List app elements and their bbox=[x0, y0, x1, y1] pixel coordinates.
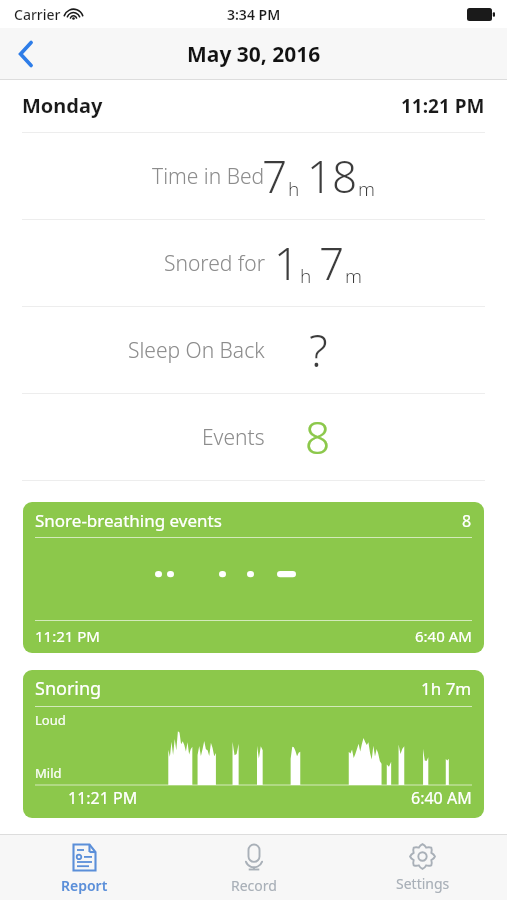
staticText: 1h 7m bbox=[421, 677, 472, 700]
button[interactable]: Snore-breathing events bbox=[23, 502, 484, 653]
staticText: 11:21 PM bbox=[401, 93, 485, 119]
button[interactable]: Time in Bed bbox=[0, 133, 507, 219]
staticText: Monday bbox=[22, 92, 103, 119]
staticText: 8 bbox=[462, 510, 472, 532]
button[interactable]: Snored for bbox=[0, 220, 507, 306]
button[interactable]: Events bbox=[0, 394, 507, 480]
staticText: h bbox=[300, 263, 312, 289]
staticText: 3:34 PM bbox=[227, 5, 281, 24]
staticText: m bbox=[345, 263, 362, 289]
staticText: m bbox=[358, 176, 375, 202]
staticText: Mild bbox=[35, 764, 62, 782]
staticText: 7 bbox=[262, 146, 288, 206]
staticText: 8 bbox=[305, 407, 331, 467]
staticText: 7 bbox=[319, 233, 345, 293]
staticText: 18 bbox=[307, 146, 358, 206]
staticText: Report bbox=[61, 876, 108, 895]
button[interactable]: Record bbox=[169, 834, 338, 900]
button[interactable]: Report bbox=[0, 834, 169, 900]
staticText: h bbox=[288, 176, 300, 202]
staticText: Time in Bed bbox=[152, 162, 265, 191]
staticText: 6:40 AM bbox=[411, 787, 472, 809]
staticText: Snore-breathing events bbox=[35, 509, 222, 532]
staticText: 6:40 AM bbox=[415, 626, 472, 646]
button[interactable]: Sleep On Back bbox=[0, 307, 507, 393]
staticText: Sleep On Back bbox=[128, 336, 265, 365]
staticText: Events bbox=[202, 423, 265, 452]
staticText: May 30, 2016 bbox=[187, 40, 321, 69]
staticText: ? bbox=[309, 320, 328, 380]
staticText: Record bbox=[231, 876, 277, 895]
staticText: 11:21 PM bbox=[35, 626, 100, 646]
staticText: 1 bbox=[274, 233, 300, 293]
staticText: Carrier bbox=[14, 5, 61, 24]
staticText: 11:21 PM bbox=[68, 787, 138, 809]
staticText: Loud bbox=[35, 711, 66, 729]
button[interactable]: Settings bbox=[338, 834, 507, 900]
staticText: Settings bbox=[396, 874, 450, 893]
button[interactable]: Snoring bbox=[23, 670, 484, 818]
button[interactable]: Back bbox=[0, 28, 52, 80]
staticText: Snoring bbox=[35, 676, 102, 701]
staticText: Snored for bbox=[164, 249, 265, 278]
